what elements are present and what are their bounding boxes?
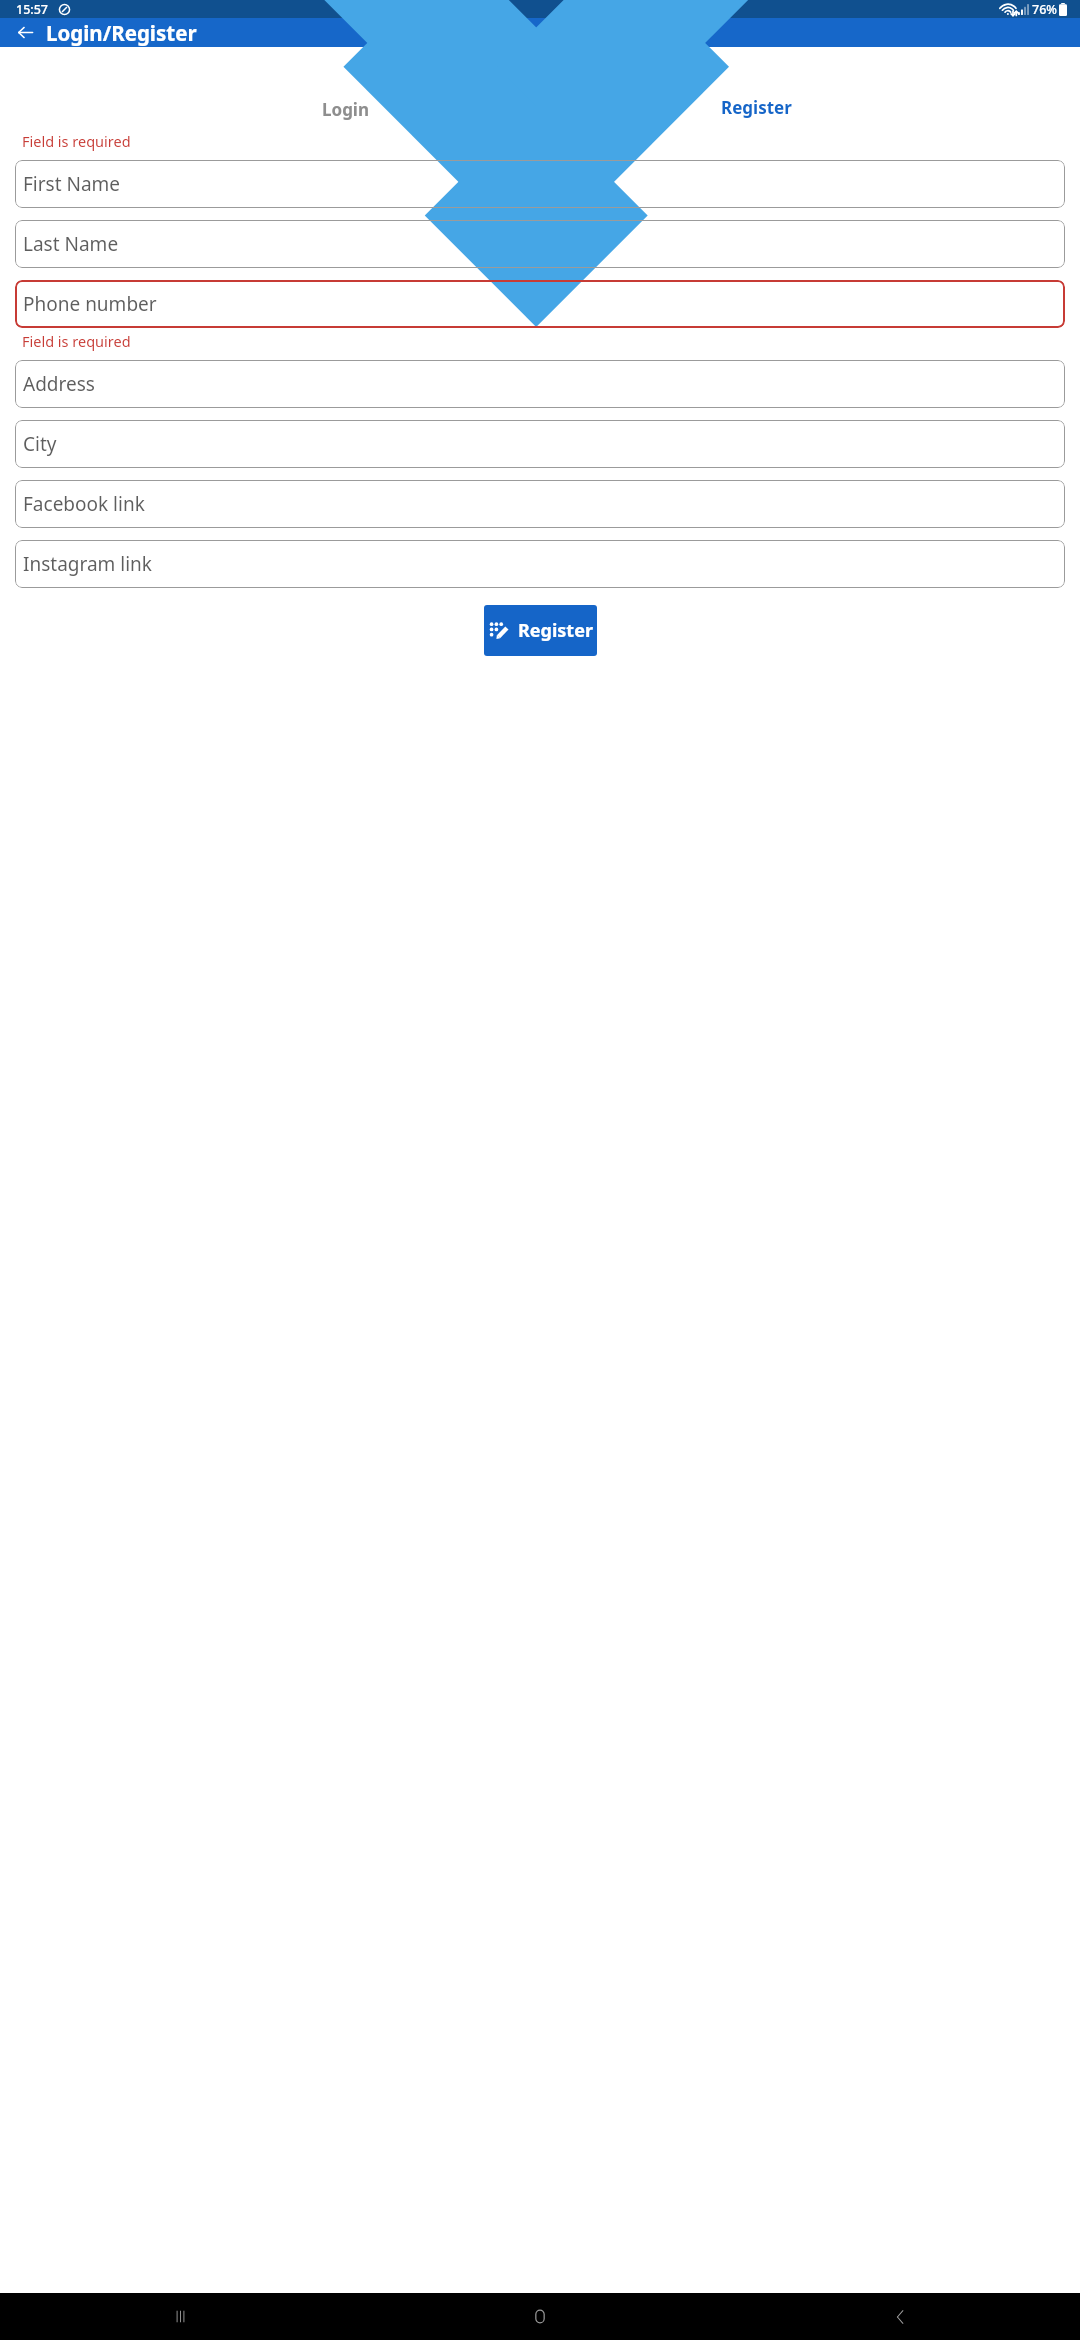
button[interactable]: City <box>15 420 1065 468</box>
staticText: Register <box>518 618 593 643</box>
button[interactable]: Register <box>551 96 961 123</box>
staticText: Address <box>23 371 95 397</box>
button[interactable]: Address <box>15 360 1065 408</box>
button[interactable]: Login <box>141 96 551 123</box>
staticText: 15:57 <box>16 1 49 18</box>
staticText: City <box>23 431 57 457</box>
staticText: Register <box>721 96 792 119</box>
staticText: First Name <box>23 171 121 197</box>
button[interactable]: Register <box>484 605 597 656</box>
staticText: 76% <box>1032 1 1057 18</box>
button[interactable]: Recents <box>0 2293 360 2340</box>
staticText: Field is required <box>22 131 131 151</box>
button[interactable]: First Name <box>15 160 1065 208</box>
button[interactable]: Home <box>360 2293 720 2340</box>
button[interactable]: Facebook link <box>15 480 1065 528</box>
button[interactable]: Phone number <box>15 280 1065 328</box>
staticText: Instagram link <box>23 551 153 577</box>
staticText: Last Name <box>23 231 119 257</box>
button[interactable]: Back <box>6 18 44 47</box>
button[interactable]: Last Name <box>15 220 1065 268</box>
staticText: Login/Register <box>46 19 197 47</box>
staticText: Field is required <box>22 331 131 351</box>
staticText: Login <box>322 98 370 121</box>
button[interactable]: Instagram link <box>15 540 1065 588</box>
button[interactable]: Back <box>720 2293 1080 2340</box>
staticText: Phone number <box>23 291 157 317</box>
staticText: Facebook link <box>23 491 145 517</box>
